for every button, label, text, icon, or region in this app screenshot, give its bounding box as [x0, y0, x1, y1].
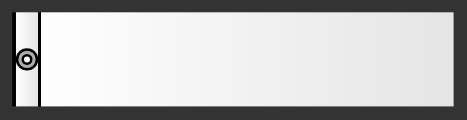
button[interactable]: Record: [16, 48, 39, 71]
